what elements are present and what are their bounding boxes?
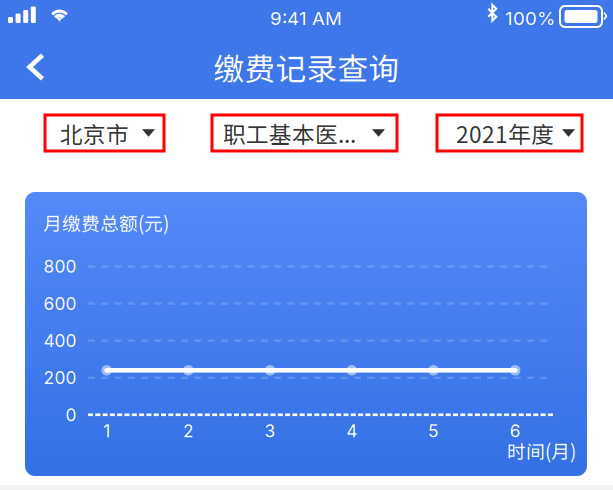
staticText: 9:41 AM: [270, 7, 342, 30]
staticText: 4: [346, 420, 357, 441]
staticText: 职工基本医...: [223, 117, 356, 149]
staticText: 缴费记录查询: [213, 45, 399, 89]
staticText: 月缴费总额(元): [43, 209, 169, 236]
staticText: 北京市: [60, 117, 129, 149]
staticText: 1: [103, 420, 110, 441]
staticText: 200: [43, 367, 76, 388]
staticText: 时间(月): [507, 437, 576, 464]
staticText: 400: [43, 330, 76, 351]
staticText: 2: [183, 420, 194, 441]
staticText: 600: [43, 293, 76, 314]
staticText: 6: [510, 420, 521, 441]
staticText: 0: [65, 404, 76, 425]
button[interactable]: 北京市: [45, 115, 164, 151]
staticText: 2021年度: [456, 117, 554, 149]
button[interactable]: 2021年度: [437, 115, 582, 151]
staticText: 5: [428, 420, 439, 441]
button[interactable]: Back: [7, 38, 65, 96]
staticText: 800: [43, 256, 76, 277]
button[interactable]: 职工基本医...: [212, 115, 397, 151]
staticText: 3: [265, 420, 276, 441]
staticText: 100%: [505, 7, 555, 30]
